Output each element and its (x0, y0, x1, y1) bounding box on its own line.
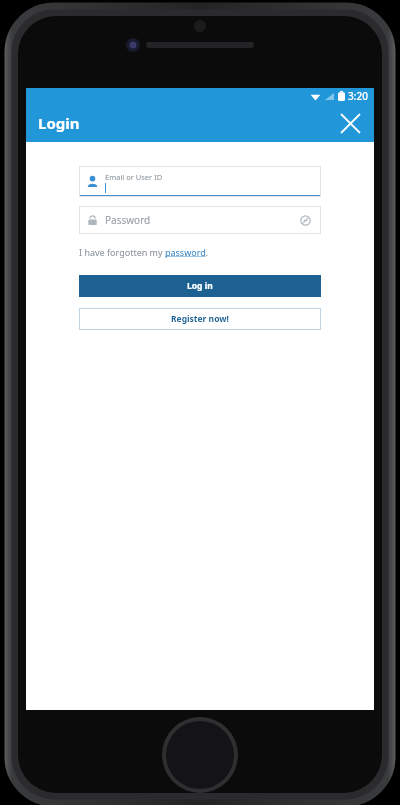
button[interactable]: Close (332, 105, 368, 141)
button[interactable]: I have forgotten my password. (79, 246, 209, 258)
staticText: Register now! (171, 313, 229, 325)
button[interactable]: Email or User ID (79, 166, 321, 197)
button[interactable]: Log in (79, 275, 321, 297)
staticText: Login (38, 113, 80, 133)
staticText: Email or User ID (105, 172, 163, 182)
staticText: 3:20 (348, 89, 368, 103)
staticText: Log in (187, 280, 213, 292)
button[interactable]: Password (79, 206, 321, 234)
button[interactable]: Show password (297, 212, 313, 228)
staticText: Password (105, 213, 151, 227)
button[interactable]: Register now! (79, 308, 321, 330)
